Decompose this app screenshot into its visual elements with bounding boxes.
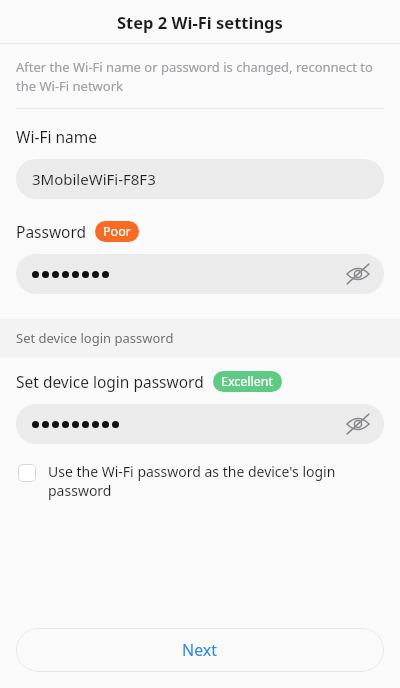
staticText: 3MobileWiFi-F8F3 xyxy=(32,169,156,189)
button[interactable]: Show password xyxy=(16,254,384,294)
staticText: Set device login password xyxy=(16,329,174,347)
staticText: Wi-Fi name xyxy=(16,126,97,147)
staticText: Use the Wi-Fi password as the device's l… xyxy=(48,462,340,500)
button[interactable]: Show password xyxy=(338,404,378,444)
button[interactable]: Use the Wi-Fi password as the device's l… xyxy=(0,462,400,500)
staticText: Password xyxy=(16,221,87,242)
button[interactable]: Next xyxy=(16,628,384,672)
staticText: Step 2 Wi-Fi settings xyxy=(117,11,283,33)
button[interactable]: Excellent xyxy=(213,371,282,392)
staticText: Excellent xyxy=(221,373,274,390)
staticText: After the Wi-Fi name or password is chan… xyxy=(16,58,378,95)
button[interactable]: 3MobileWiFi-F8F3 xyxy=(16,159,384,199)
staticText: Set device login password xyxy=(16,371,204,392)
button[interactable]: Show password xyxy=(338,254,378,294)
button[interactable]: Poor xyxy=(95,221,139,242)
staticText: Next xyxy=(182,639,218,661)
button[interactable]: Show password xyxy=(16,404,384,444)
staticText: Poor xyxy=(103,223,131,240)
